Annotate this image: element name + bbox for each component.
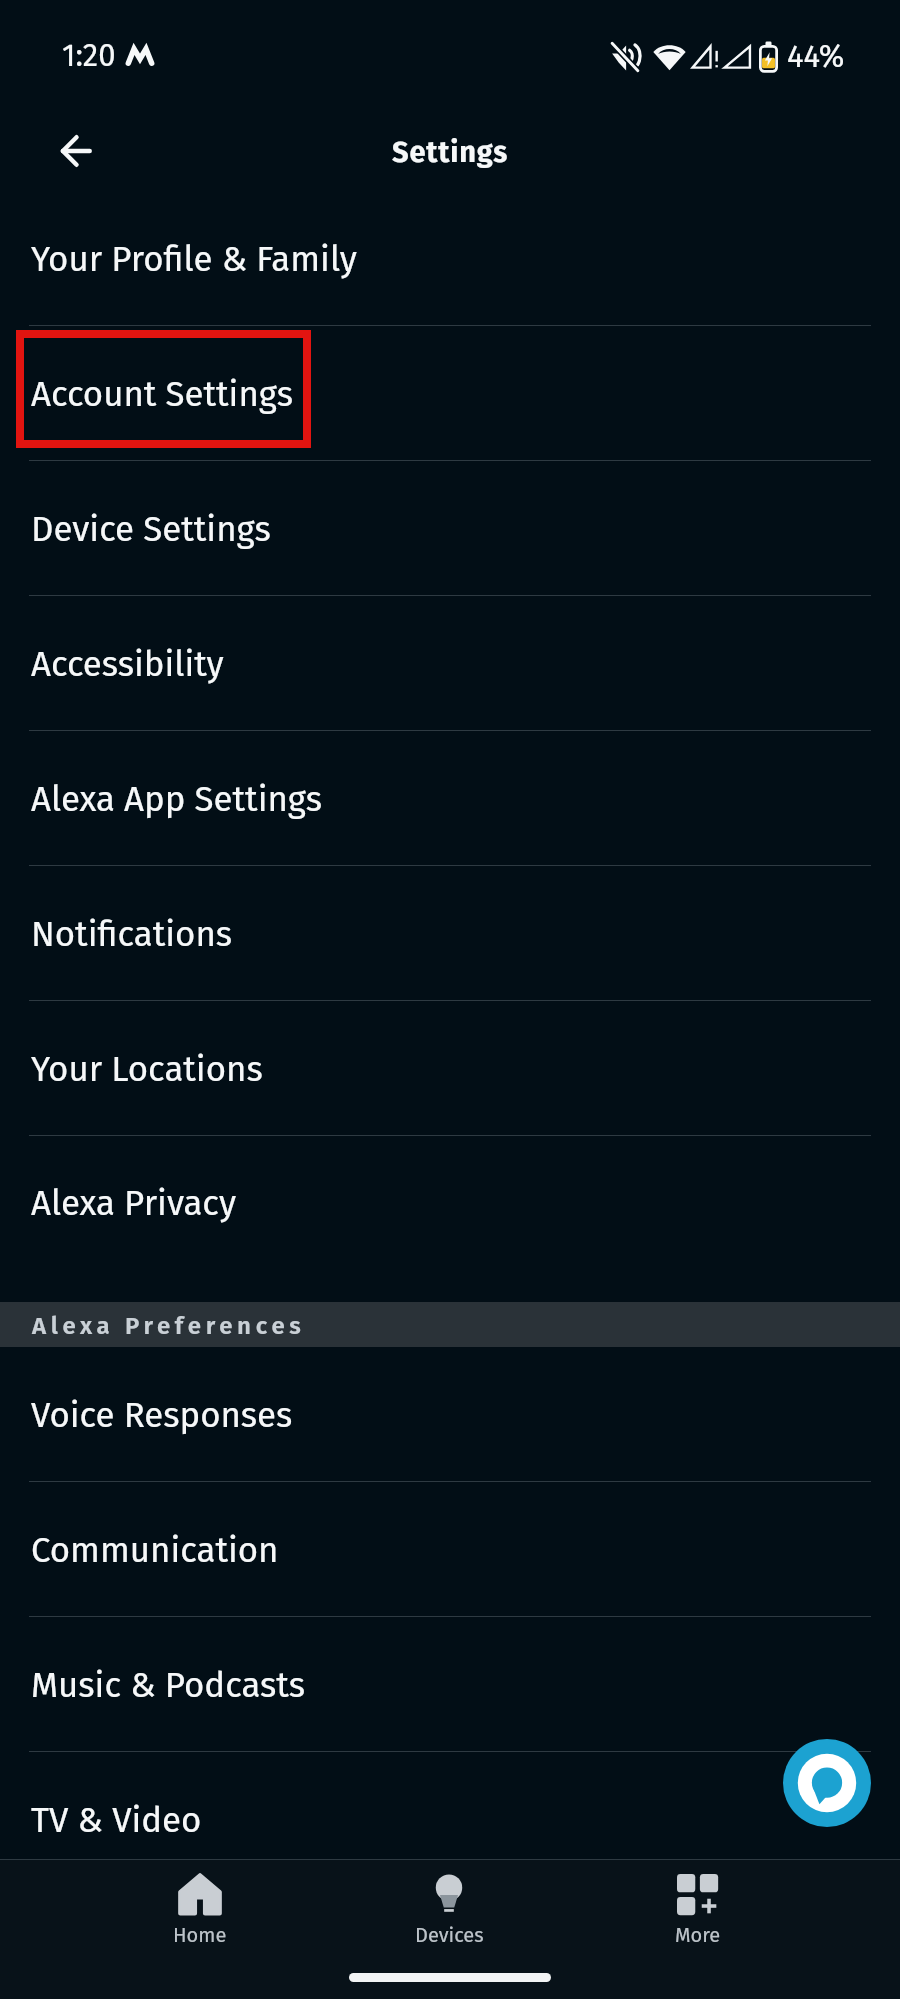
staticText: Account Settings	[31, 373, 293, 415]
button[interactable]: More	[608, 1860, 788, 1970]
staticText: Settings	[392, 135, 509, 170]
staticText: Alexa Privacy	[31, 1182, 237, 1224]
staticText: More	[675, 1923, 721, 1947]
button[interactable]: Accessibility	[0, 596, 900, 731]
button[interactable]: Back	[44, 119, 108, 183]
button[interactable]: Voice Responses	[0, 1347, 900, 1482]
button[interactable]: Device Settings	[0, 461, 900, 596]
button[interactable]: TV & Video	[0, 1752, 900, 1887]
staticText: Alexa App Settings	[31, 778, 322, 820]
staticText: 1:20	[62, 37, 116, 74]
staticText: Alexa Preferences	[32, 1312, 306, 1341]
button[interactable]: Alexa App Settings	[0, 731, 900, 866]
button[interactable]: Account Settings	[0, 326, 900, 461]
staticText: Voice Responses	[31, 1394, 293, 1436]
button[interactable]: Alexa Privacy	[0, 1136, 900, 1302]
staticText: Music & Podcasts	[31, 1664, 306, 1706]
button[interactable]: Notifications	[0, 866, 900, 1001]
button[interactable]: Music & Podcasts	[0, 1617, 900, 1752]
staticText: Notifications	[31, 913, 233, 955]
button[interactable]: Your Locations	[0, 1001, 900, 1136]
button[interactable]: Home	[110, 1860, 290, 1970]
staticText: TV & Video	[31, 1799, 202, 1841]
button[interactable]: Communication	[0, 1482, 900, 1617]
button[interactable]: Ask Alexa	[783, 1739, 871, 1827]
button[interactable]: Devices	[359, 1860, 539, 1970]
staticText: Device Settings	[31, 508, 271, 550]
staticText: 44%	[787, 38, 845, 75]
staticText: Communication	[31, 1529, 279, 1571]
staticText: Home	[173, 1923, 227, 1947]
staticText: Devices	[415, 1923, 484, 1947]
staticText: Accessibility	[31, 643, 224, 685]
button[interactable]: Your Profile & Family	[0, 191, 900, 326]
staticText: Your Profile & Family	[31, 238, 357, 280]
staticText: Your Locations	[31, 1048, 263, 1090]
